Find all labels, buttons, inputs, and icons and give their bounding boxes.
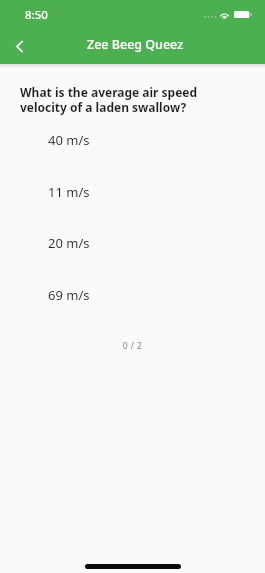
staticText: What is the average air speed velocity o… (20, 84, 245, 115)
staticText: Zee Beeg Queez (87, 36, 184, 53)
button[interactable]: 20 m/s (0, 229, 265, 281)
button[interactable]: 40 m/s (0, 126, 265, 178)
other: Cellular signal (202, 10, 216, 19)
staticText: 8:50 (25, 7, 48, 23)
staticText: 0 / 2 (0, 340, 265, 352)
button[interactable]: 69 m/s (0, 281, 265, 333)
button[interactable]: Back (0, 26, 39, 66)
other: Battery (234, 11, 252, 18)
button[interactable]: 11 m/s (0, 178, 265, 230)
staticText: 20 m/s (48, 234, 90, 252)
staticText: 40 m/s (48, 131, 90, 149)
staticText: 69 m/s (48, 286, 90, 304)
other: Wi-Fi (219, 11, 230, 19)
staticText: 11 m/s (48, 183, 90, 201)
